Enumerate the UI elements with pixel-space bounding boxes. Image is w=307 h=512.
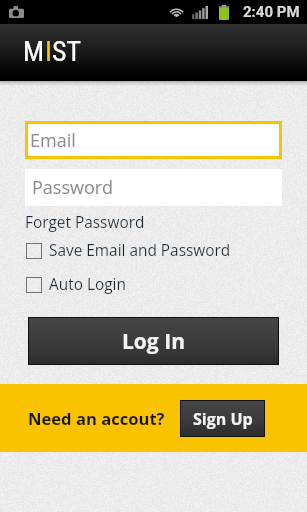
staticText: Need an accout? xyxy=(28,407,165,430)
button[interactable]: Log In xyxy=(29,318,278,364)
button[interactable]: Sign Up xyxy=(181,401,264,436)
staticText: I xyxy=(45,35,52,68)
button[interactable]: Password xyxy=(25,169,282,206)
button[interactable]: Save Email and Password xyxy=(0,240,307,261)
staticText: ST xyxy=(52,35,82,68)
staticText: Email xyxy=(30,128,76,153)
button[interactable]: Email xyxy=(25,121,282,159)
button[interactable]: Forget Password xyxy=(25,211,145,234)
staticText: 2:40 PM xyxy=(243,3,300,21)
staticText: M xyxy=(23,35,45,68)
staticText: Forget Password xyxy=(25,212,145,233)
staticText: Save Email and Password xyxy=(49,240,231,261)
staticText: Auto Login xyxy=(49,274,126,295)
staticText: Password xyxy=(32,175,114,200)
button[interactable]: Auto Login xyxy=(0,274,307,295)
staticText: Log In xyxy=(122,327,185,356)
staticText: Sign Up xyxy=(193,408,253,430)
